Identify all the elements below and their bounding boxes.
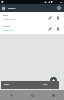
button[interactable]: Edit xyxy=(45,12,54,23)
button[interactable]: Home xyxy=(22,90,43,100)
button[interactable]: Open navigation menu xyxy=(0,4,7,12)
button[interactable]: Add profile xyxy=(50,77,57,84)
button[interactable]: DEFAULT xyxy=(0,12,64,23)
button[interactable]: Back xyxy=(0,90,22,100)
staticText: UNDO xyxy=(43,84,48,86)
button[interactable]: Delete xyxy=(54,23,62,34)
button[interactable]: Settings xyxy=(55,4,63,12)
button[interactable]: SUBSTITUTE xyxy=(0,23,64,34)
staticText: Profiles xyxy=(8,7,16,10)
button[interactable]: Delete xyxy=(54,12,62,23)
staticText: Deleted xyxy=(4,84,10,86)
staticText: DEFAULT xyxy=(3,15,9,17)
staticText: No tags, Not active xyxy=(3,18,16,20)
button[interactable]: Recents xyxy=(43,90,64,100)
button[interactable]: Edit xyxy=(45,23,54,34)
staticText: 9:41 xyxy=(60,1,63,3)
staticText: SUBSTITUTE xyxy=(3,26,11,28)
button[interactable]: Deleted xyxy=(1,81,59,89)
button[interactable]: UNDO xyxy=(43,84,48,86)
staticText: No tags, active xyxy=(3,29,13,31)
